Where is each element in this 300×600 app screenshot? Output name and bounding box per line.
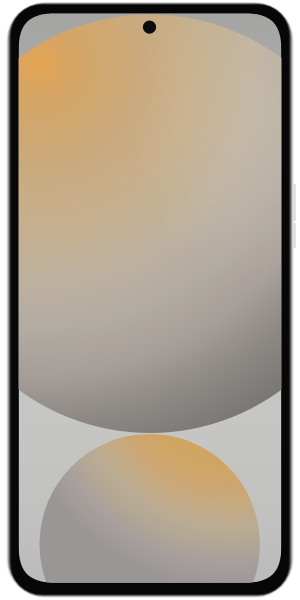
other: Phone device mockup — [0, 0, 300, 600]
